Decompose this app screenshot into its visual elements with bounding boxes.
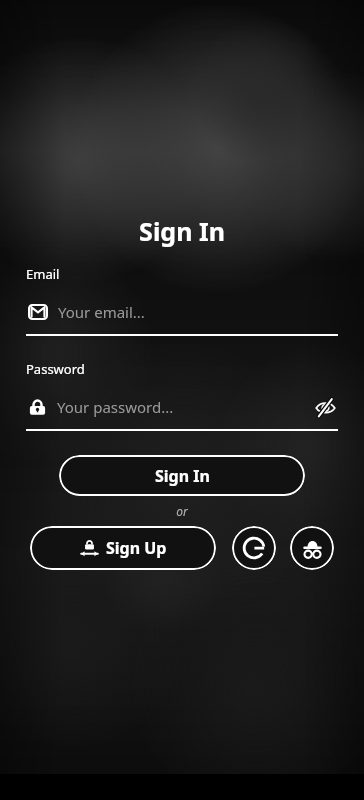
staticText: Password <box>26 360 85 378</box>
button[interactable]: Sign In <box>59 455 305 496</box>
staticText: or <box>0 503 364 519</box>
staticText: Your email... <box>58 302 338 322</box>
button[interactable]: Sign in with Google <box>232 526 276 570</box>
staticText: Sign Up <box>106 537 167 559</box>
button[interactable]: Show password <box>312 394 338 420</box>
staticText: Sign In <box>0 214 364 248</box>
staticText: Sign In <box>155 465 210 487</box>
staticText: Your password... <box>57 397 312 417</box>
button[interactable]: Continue as guest <box>290 526 334 570</box>
staticText: Email <box>26 265 60 283</box>
button[interactable]: Sign Up <box>30 526 216 570</box>
